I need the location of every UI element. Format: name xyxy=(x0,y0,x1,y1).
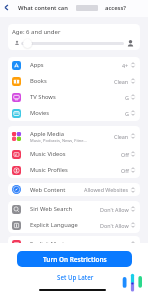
staticText: Apple Media xyxy=(30,130,64,138)
button[interactable]: Set Up Later xyxy=(55,271,96,283)
staticText: Web Content xyxy=(30,186,66,194)
staticText: Don't Allow xyxy=(100,222,129,229)
button[interactable]: Movies xyxy=(8,105,140,121)
staticText: Clean xyxy=(114,78,129,85)
staticText: Apps xyxy=(30,61,44,69)
staticText: Music Profiles xyxy=(30,166,68,174)
staticText: Movies xyxy=(30,109,50,117)
staticText: 4+ xyxy=(122,62,129,69)
staticText: Explicit Music xyxy=(30,240,67,248)
button[interactable]: Siri Web Search xyxy=(8,201,140,217)
staticText: What content can xyxy=(18,4,68,12)
staticText: Explicit Language xyxy=(30,221,78,229)
button[interactable]: Books xyxy=(8,73,140,89)
staticText: Allowed Websites xyxy=(84,186,129,193)
staticText: G xyxy=(125,94,129,101)
button[interactable]: Music Profiles xyxy=(8,162,140,178)
button[interactable]: Apple Media xyxy=(8,126,140,146)
button[interactable]: Web Content xyxy=(8,183,140,196)
button[interactable]: Turn On Restrictions xyxy=(17,251,132,267)
button[interactable]: Explicit Music xyxy=(8,236,140,252)
staticText: Siri Web Search xyxy=(30,205,73,213)
staticText: Music Videos xyxy=(30,150,66,158)
button[interactable]: Age slider xyxy=(22,38,33,49)
staticText: Off xyxy=(121,167,129,174)
staticText: access? xyxy=(105,4,126,12)
staticText: Set Up Later xyxy=(57,273,94,281)
staticText: Don't Allow xyxy=(100,206,129,213)
button[interactable]: Music Videos xyxy=(8,146,140,162)
button[interactable]: Apps xyxy=(8,57,140,73)
button[interactable]: TV Shows xyxy=(8,89,140,105)
staticText: Music, Podcasts, News, Fitne… xyxy=(30,138,87,143)
button[interactable]: Explicit Language xyxy=(8,217,140,233)
button[interactable]: Back xyxy=(1,2,12,13)
staticText: Age: 6 and under xyxy=(12,28,61,36)
staticText: Off xyxy=(121,151,129,158)
staticText: Books xyxy=(30,77,47,85)
staticText: G xyxy=(125,110,129,117)
staticText: Clean xyxy=(114,133,129,140)
staticText: TV Shows xyxy=(30,93,56,101)
staticText: Turn On Restrictions xyxy=(43,255,107,264)
